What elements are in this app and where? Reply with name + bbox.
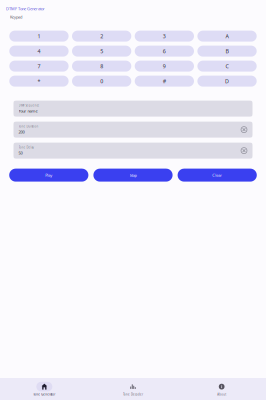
staticText: Tone Duration xyxy=(18,125,38,128)
button[interactable]: 7 xyxy=(9,61,69,72)
staticText: 7 xyxy=(37,63,40,70)
staticText: DTMF Tone Generator xyxy=(6,6,45,11)
staticText: Play xyxy=(45,172,52,178)
button[interactable]: 2 xyxy=(72,31,131,42)
button[interactable]: 8 xyxy=(72,61,131,72)
staticText: 8 xyxy=(100,63,103,70)
staticText: 4 xyxy=(37,48,40,55)
staticText: Tone Generator xyxy=(33,393,55,396)
button[interactable]: Clear xyxy=(239,125,248,134)
button[interactable]: 6 xyxy=(135,46,194,57)
button[interactable]: 1 xyxy=(9,31,69,42)
button[interactable]: A xyxy=(197,31,257,42)
button[interactable]: * xyxy=(9,76,69,87)
button[interactable]: # xyxy=(135,76,194,87)
staticText: 5 xyxy=(100,48,103,55)
staticText: Tone Decoder xyxy=(123,393,143,396)
button[interactable]: 9 xyxy=(135,61,194,72)
button[interactable]: 0 xyxy=(72,76,131,87)
button[interactable]: Tone Generator xyxy=(0,379,89,399)
button[interactable]: Tone Decoder xyxy=(89,379,177,399)
button[interactable]: 3 xyxy=(135,31,194,42)
button[interactable]: Play xyxy=(9,169,88,182)
staticText: 0 xyxy=(100,78,103,85)
button[interactable]: B xyxy=(197,46,257,57)
staticText: # xyxy=(163,78,166,85)
staticText: Clear xyxy=(212,172,222,178)
button[interactable]: C xyxy=(197,61,257,72)
button[interactable]: About xyxy=(177,379,266,399)
staticText: B xyxy=(226,48,229,55)
button[interactable]: Clear xyxy=(178,169,257,182)
staticText: 2 xyxy=(100,33,103,40)
button[interactable]: Stop xyxy=(93,169,173,182)
staticText: Tone Delay xyxy=(18,146,33,149)
staticText: C xyxy=(226,63,229,70)
staticText: 1 xyxy=(37,33,40,40)
staticText: Stop xyxy=(129,172,136,178)
button[interactable]: 5 xyxy=(72,46,131,57)
button[interactable]: D xyxy=(197,76,257,87)
button[interactable]: Clear xyxy=(239,146,248,155)
staticText: 6 xyxy=(163,48,166,55)
staticText: 3 xyxy=(163,33,166,40)
staticText: D xyxy=(225,78,229,85)
staticText: Your name xyxy=(18,108,37,114)
staticText: About xyxy=(217,393,226,396)
staticText: DTMF Sequence xyxy=(18,104,39,107)
button[interactable]: 4 xyxy=(9,46,69,57)
staticText: A xyxy=(226,33,229,40)
staticText: 200 xyxy=(18,129,24,135)
staticText: 9 xyxy=(163,63,166,70)
staticText: * xyxy=(37,78,40,85)
staticText: Keypad xyxy=(10,14,22,20)
staticText: 50 xyxy=(18,150,22,156)
